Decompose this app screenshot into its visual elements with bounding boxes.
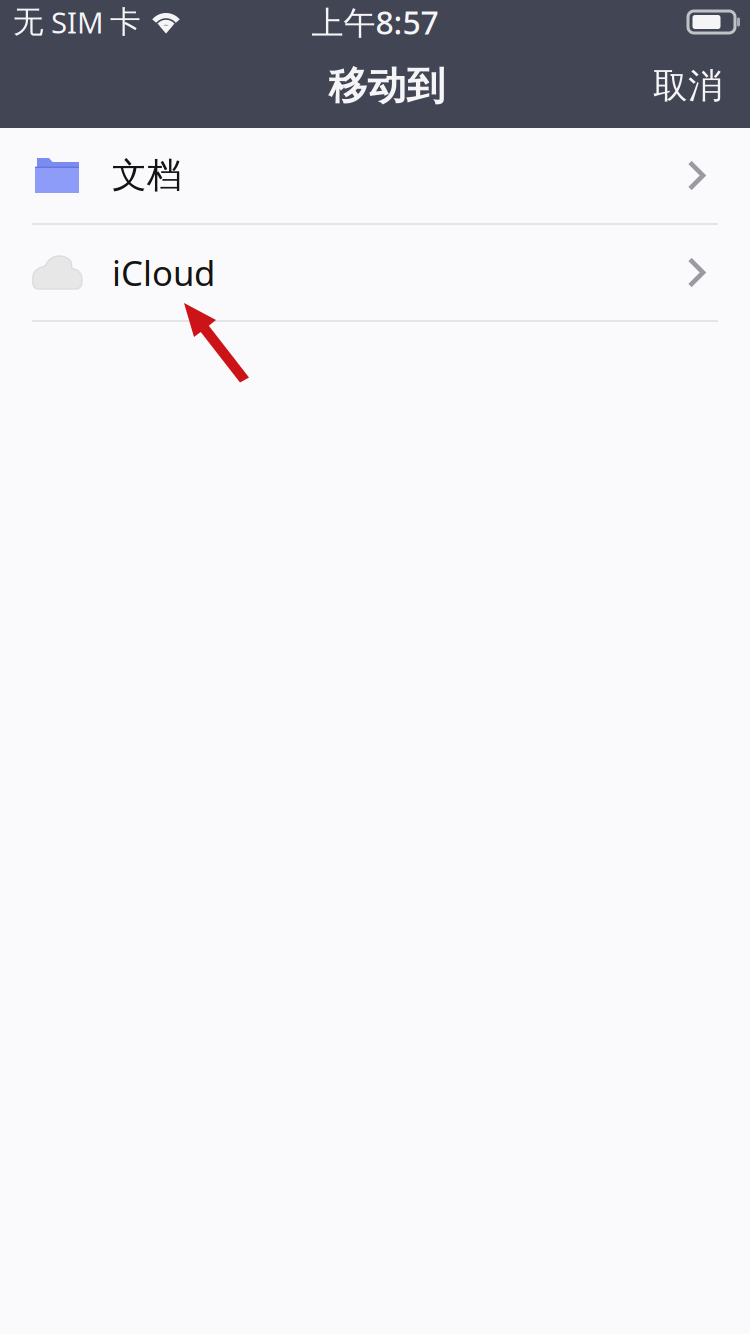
staticText: iCloud xyxy=(112,249,215,295)
staticText: 上午8:57 xyxy=(311,1,438,43)
staticText: SIM xyxy=(51,2,104,41)
staticText: 文档 xyxy=(112,154,182,197)
staticText: 取消 xyxy=(653,65,723,107)
button[interactable]: 取消 xyxy=(633,51,743,121)
button[interactable]: 文档 xyxy=(0,128,750,223)
button[interactable]: iCloud xyxy=(0,225,750,320)
staticText: 无 xyxy=(13,3,44,41)
staticText: 移动到 xyxy=(328,62,445,110)
staticText: 卡 xyxy=(110,3,141,41)
